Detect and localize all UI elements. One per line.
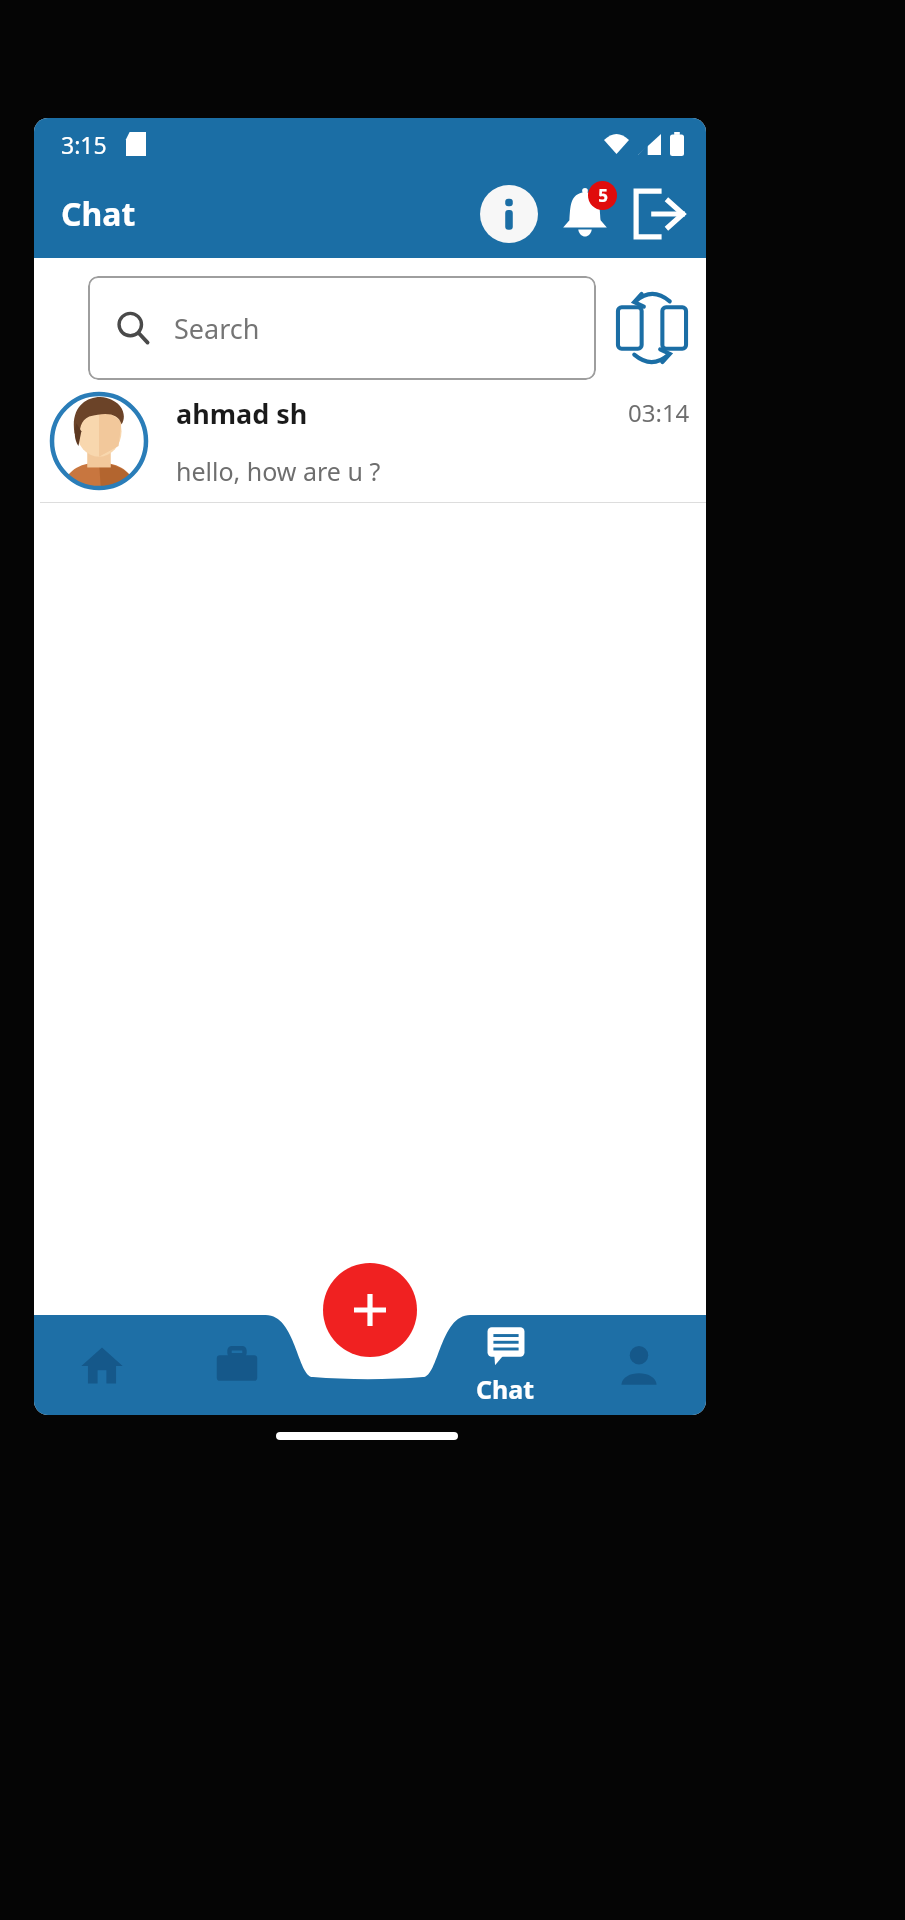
button[interactable]: Sync devices — [610, 286, 694, 370]
staticText: Chat — [476, 1372, 535, 1406]
staticText: hello, how are u ? — [176, 454, 381, 488]
button[interactable]: New chat — [323, 1263, 417, 1357]
staticText: 5 — [598, 184, 608, 207]
button[interactable]: ahmad sh — [34, 380, 706, 502]
button[interactable]: Search — [88, 276, 596, 380]
button[interactable]: Information — [478, 183, 540, 245]
button[interactable]: Chat — [438, 1315, 572, 1415]
staticText: 3:15 — [61, 129, 107, 160]
button[interactable]: Jobs — [169, 1315, 304, 1415]
staticText: ahmad sh — [176, 395, 308, 432]
staticText: 03:14 — [628, 396, 690, 429]
staticText: Chat — [61, 192, 136, 236]
staticText: Search — [174, 310, 260, 347]
button[interactable]: Notifications — [552, 181, 618, 247]
button[interactable]: Profile — [572, 1315, 706, 1415]
button[interactable]: Home — [34, 1315, 169, 1415]
button[interactable]: Log out — [626, 181, 692, 247]
